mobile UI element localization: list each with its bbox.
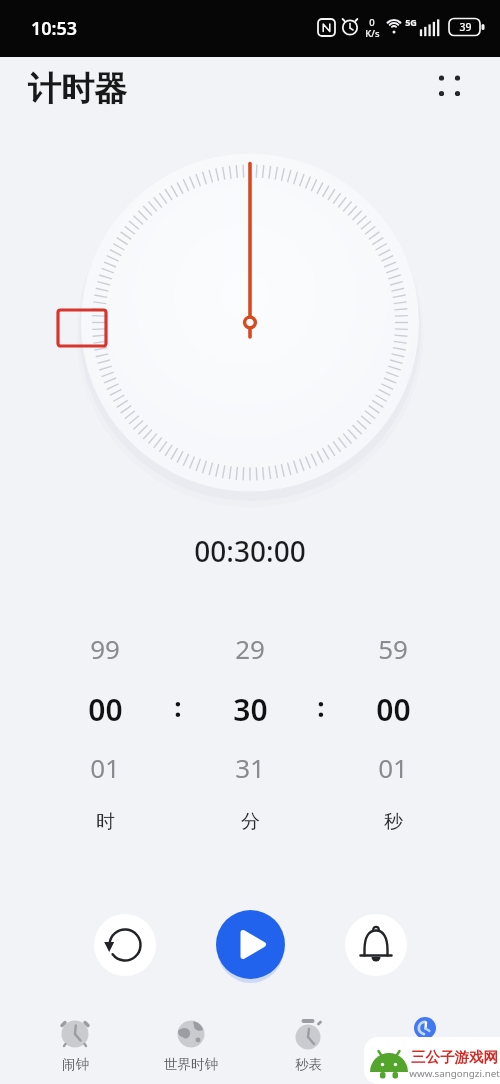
staticText: 59 <box>378 631 408 666</box>
staticText: 0 <box>369 16 375 28</box>
staticText: 00 <box>376 689 411 730</box>
staticText: 39 <box>459 20 472 34</box>
button[interactable] <box>216 910 285 979</box>
staticText: 31 <box>235 750 265 785</box>
staticText: 5G <box>405 16 417 28</box>
button[interactable]: 秒表 <box>268 1010 348 1084</box>
staticText: www.sangongzi.net <box>409 1067 500 1080</box>
staticText: 00:30:00 <box>194 532 306 570</box>
button[interactable] <box>94 914 156 976</box>
button[interactable]: 闹钟 <box>35 1010 115 1084</box>
button[interactable]: 世界时钟 <box>151 1010 231 1084</box>
staticText: 01 <box>378 750 408 785</box>
staticText: : <box>317 689 325 724</box>
staticText: 计时器 <box>28 68 127 110</box>
staticText: 秒表 <box>295 1056 322 1073</box>
button[interactable] <box>431 66 469 106</box>
staticText: 分 <box>241 810 260 834</box>
staticText: 三公子游戏网 <box>411 1048 498 1066</box>
staticText: 99 <box>90 631 120 666</box>
staticText: 29 <box>235 631 265 666</box>
staticText: 01 <box>90 750 120 785</box>
staticText: 00 <box>88 689 123 730</box>
staticText: K/s <box>365 27 380 39</box>
staticText: 秒 <box>384 810 403 834</box>
staticText: 30 <box>233 689 268 730</box>
staticText: 闹钟 <box>62 1056 89 1073</box>
button[interactable] <box>385 1010 465 1084</box>
staticText: : <box>174 689 182 724</box>
staticText: 世界时钟 <box>164 1056 218 1073</box>
staticText: 10:53 <box>31 16 78 41</box>
staticText: 时 <box>96 810 115 834</box>
button[interactable] <box>345 914 407 976</box>
